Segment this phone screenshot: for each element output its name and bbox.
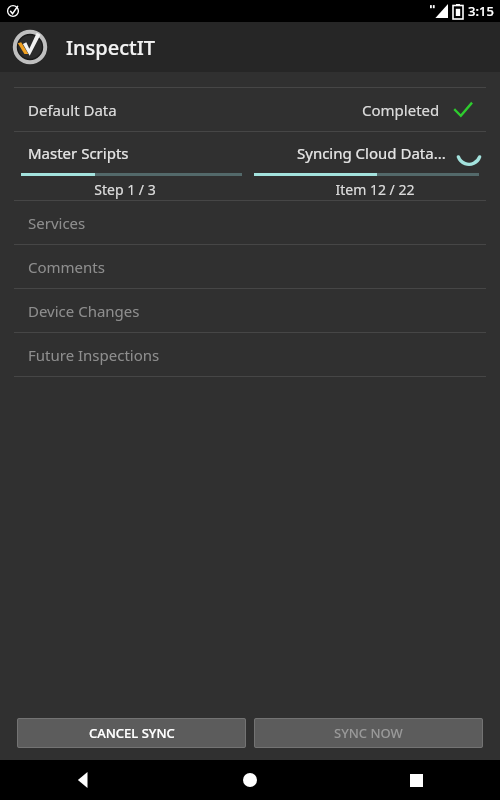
staticText: Comments bbox=[28, 257, 105, 277]
staticText: Future Inspections bbox=[28, 345, 160, 365]
button[interactable]: InspectIT logo bbox=[12, 29, 48, 65]
button[interactable]: Comments bbox=[0, 245, 500, 288]
button[interactable]: Master Scripts bbox=[0, 132, 250, 199]
staticText: Step 1 / 3 bbox=[0, 180, 250, 199]
staticText: Services bbox=[28, 213, 86, 233]
staticText: Item 12 / 22 bbox=[250, 180, 500, 199]
button[interactable]: Default Data bbox=[0, 88, 500, 131]
staticText: Completed bbox=[362, 100, 440, 120]
button[interactable]: SYNC NOW bbox=[254, 718, 483, 748]
button[interactable]: Recent apps bbox=[333, 760, 500, 800]
staticText: Syncing Cloud Data... bbox=[297, 143, 446, 163]
staticText: Device Changes bbox=[28, 301, 140, 321]
staticText: InspectIT bbox=[66, 34, 156, 61]
staticText: CANCEL SYNC bbox=[89, 724, 175, 742]
button[interactable]: Syncing Cloud Data... bbox=[250, 132, 500, 199]
button[interactable]: CANCEL SYNC bbox=[17, 718, 246, 748]
button[interactable]: Device Changes bbox=[0, 289, 500, 332]
button[interactable]: Future Inspections bbox=[0, 333, 500, 376]
button[interactable]: Services bbox=[0, 201, 500, 244]
staticText: SYNC NOW bbox=[334, 724, 403, 742]
staticText: 3:15 bbox=[468, 2, 494, 20]
staticText: Master Scripts bbox=[28, 143, 129, 163]
staticText: Default Data bbox=[28, 100, 117, 120]
button[interactable]: Home bbox=[166, 760, 333, 800]
button[interactable]: Back bbox=[0, 760, 166, 800]
